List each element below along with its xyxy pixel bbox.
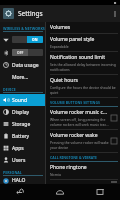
button[interactable]: Display bbox=[0, 106, 45, 118]
button[interactable]: Recent apps bbox=[80, 184, 120, 200]
staticText: VOLUME BUTTONS SETTINGS bbox=[50, 100, 100, 105]
staticText: Expandable bbox=[50, 44, 69, 49]
staticText: PERSONAL bbox=[3, 170, 22, 175]
staticText: Volume rocker music co... bbox=[50, 109, 109, 116]
staticText: More... bbox=[12, 74, 29, 81]
staticText: Volume rocker wake bbox=[50, 132, 98, 139]
button[interactable]: HALO bbox=[0, 177, 45, 184]
staticText: Sets the allowed delay between incoming … bbox=[50, 62, 118, 72]
staticText: Volumes bbox=[50, 24, 71, 31]
button[interactable]: Apps bbox=[0, 142, 45, 154]
button[interactable]: Sound bbox=[0, 94, 45, 106]
button[interactable]: Phone ringtone bbox=[50, 162, 118, 179]
button[interactable]: Volume panel style bbox=[50, 34, 118, 51]
button[interactable]: Volume rocker wake bbox=[50, 130, 118, 152]
staticText: HALO bbox=[12, 177, 26, 184]
button[interactable]: Volume rocker wake checkbox bbox=[111, 138, 117, 144]
button[interactable]: Vibrate when ringing bbox=[50, 180, 118, 184]
staticText: Volume panel style bbox=[50, 36, 95, 43]
staticText: Sound bbox=[12, 97, 28, 104]
button[interactable]: Users bbox=[0, 154, 45, 166]
staticText: OFF bbox=[17, 50, 24, 55]
staticText: Configure the hours the device should be… bbox=[50, 85, 118, 95]
staticText: Apps bbox=[12, 145, 24, 152]
staticText: Settings bbox=[18, 9, 43, 18]
staticText: Quiet hours bbox=[50, 77, 78, 84]
staticText: When screen off, long pressing the volum… bbox=[50, 117, 109, 127]
staticText: Battery bbox=[12, 133, 30, 140]
button[interactable]: Notification sound limit bbox=[50, 52, 118, 74]
button[interactable]: Volume rocker music co... checkbox bbox=[111, 115, 117, 121]
button[interactable]: Volumes bbox=[50, 22, 118, 33]
staticText: Display bbox=[12, 109, 30, 116]
button[interactable]: Home bbox=[40, 184, 80, 200]
staticText: Storage bbox=[12, 121, 31, 128]
button[interactable]: ON bbox=[0, 33, 45, 46]
staticText: Nornia bbox=[50, 172, 61, 177]
staticText: Phone ringtone bbox=[50, 164, 87, 171]
staticText: Data usage bbox=[12, 62, 39, 69]
staticText: Pressing the volume rocker will wake you… bbox=[50, 140, 109, 150]
button[interactable]: More... bbox=[0, 71, 45, 83]
staticText: Users bbox=[12, 157, 26, 164]
button[interactable]: More options bbox=[109, 5, 120, 22]
button[interactable]: Data usage bbox=[0, 59, 45, 71]
button[interactable]: Back bbox=[0, 184, 40, 200]
button[interactable]: Settings app icon bbox=[3, 8, 14, 19]
staticText: CALL RINGTONE & VIBRATE bbox=[50, 155, 97, 160]
button[interactable]: Battery bbox=[0, 130, 45, 142]
staticText: WIRELESS & NETWORKS bbox=[3, 26, 45, 31]
button[interactable]: OFF bbox=[0, 46, 45, 59]
staticText: Notification sound limit bbox=[50, 54, 105, 61]
staticText: DEVICE bbox=[3, 87, 16, 92]
staticText: ON bbox=[32, 37, 38, 42]
button[interactable]: Storage bbox=[0, 118, 45, 130]
button[interactable]: Volume rocker music co... bbox=[50, 107, 118, 129]
button[interactable]: Quiet hours bbox=[50, 75, 118, 97]
